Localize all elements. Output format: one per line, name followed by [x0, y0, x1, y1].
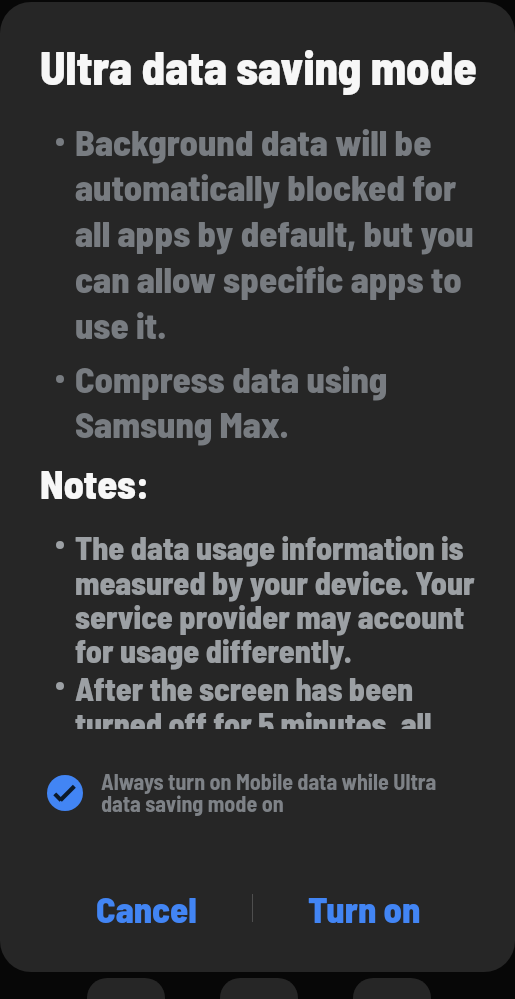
staticText: Notes: — [40, 459, 150, 507]
staticText: After the screen has been turned off for… — [75, 669, 478, 729]
staticText: Always turn on Mobile data while Ultra d… — [101, 768, 475, 817]
staticText: Ultra data saving mode — [40, 38, 477, 94]
staticText: Compress data using Samsung Max. — [75, 356, 478, 446]
button[interactable]: Always turn on Mobile data while Ultra d… — [0, 758, 515, 827]
button[interactable]: Turn on — [252, 879, 515, 937]
button[interactable]: Cancel — [0, 879, 252, 937]
staticText: Turn on — [308, 886, 421, 930]
staticText: Cancel — [96, 886, 197, 930]
staticText: Background data will be automatically bl… — [75, 119, 478, 347]
staticText: The data usage information is measured b… — [75, 528, 478, 669]
